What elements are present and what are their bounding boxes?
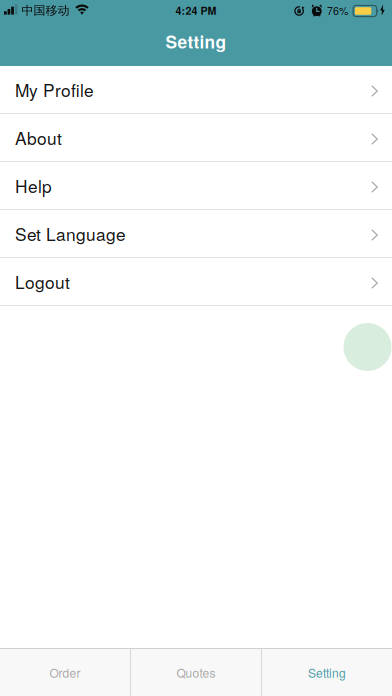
staticText: Logout [15, 269, 70, 294]
staticText: Setting [308, 664, 346, 681]
staticText: My Profile [15, 77, 94, 102]
button[interactable]: Order [0, 649, 130, 696]
button[interactable]: Setting [262, 649, 392, 696]
staticText: 中国移动 [21, 3, 69, 18]
button[interactable]: Quotes [131, 649, 261, 696]
staticText: 76% [327, 3, 348, 18]
staticText: 4:24 PM [175, 3, 216, 18]
button[interactable]: Help [0, 162, 392, 210]
staticText: Setting [165, 29, 226, 54]
staticText: Quotes [176, 664, 215, 681]
staticText: Set Language [15, 221, 126, 246]
staticText: Help [15, 173, 52, 198]
button[interactable]: Logout [0, 258, 392, 306]
button[interactable]: My Profile [0, 66, 392, 114]
button[interactable]: About [0, 114, 392, 162]
staticText: Order [49, 664, 80, 681]
button[interactable]: Set Language [0, 210, 392, 258]
button[interactable] [343, 323, 391, 371]
staticText: About [15, 125, 62, 150]
